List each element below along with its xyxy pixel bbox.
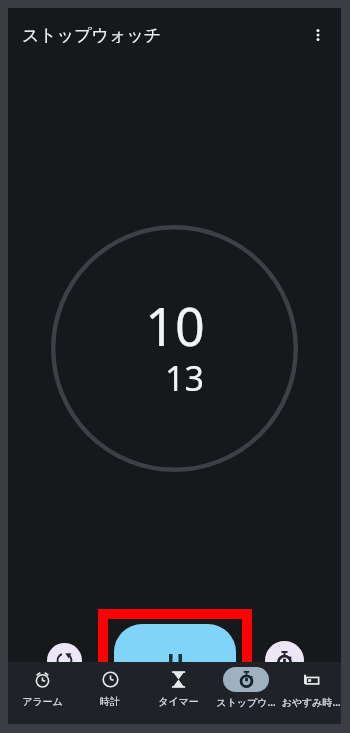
button[interactable]: Pause <box>114 624 236 698</box>
button[interactable]: Lap <box>265 641 304 680</box>
staticText: アラーム <box>22 695 63 708</box>
button[interactable]: ストップウ… <box>212 662 280 724</box>
staticText: 10 <box>145 290 205 361</box>
button[interactable]: Reset <box>47 643 82 678</box>
staticText: おやすみ時… <box>281 695 341 709</box>
button[interactable]: 時計 <box>76 662 144 724</box>
button[interactable]: アラーム <box>8 662 76 724</box>
button[interactable]: More options <box>299 16 337 54</box>
staticText: ストップウォッチ <box>22 25 162 46</box>
staticText: 時計 <box>100 695 120 708</box>
staticText: ストップウ… <box>216 695 276 709</box>
button[interactable]: おやすみ時… <box>280 662 341 724</box>
button[interactable]: タイマー <box>144 662 212 724</box>
staticText: タイマー <box>158 695 199 708</box>
staticText: 13 <box>165 355 204 401</box>
